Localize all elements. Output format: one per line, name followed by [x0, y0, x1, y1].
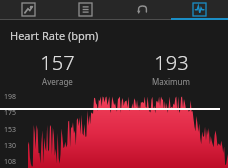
staticText: Heart Rate (bpm) [10, 28, 99, 43]
staticText: Maximum [152, 76, 190, 87]
button[interactable]: Activity [0, 0, 57, 20]
staticText: Average [42, 76, 73, 87]
staticText: 175 [4, 108, 17, 118]
button[interactable]: Log [57, 0, 114, 20]
staticText: 193 [154, 49, 189, 76]
staticText: 153 [4, 125, 17, 135]
staticText: 108 [4, 157, 17, 167]
button[interactable]: Heart rate [171, 0, 228, 20]
button[interactable]: Repeat [114, 0, 171, 20]
staticText: 198 [4, 92, 17, 102]
staticText: 157 [40, 49, 75, 76]
staticText: 130 [4, 141, 17, 151]
